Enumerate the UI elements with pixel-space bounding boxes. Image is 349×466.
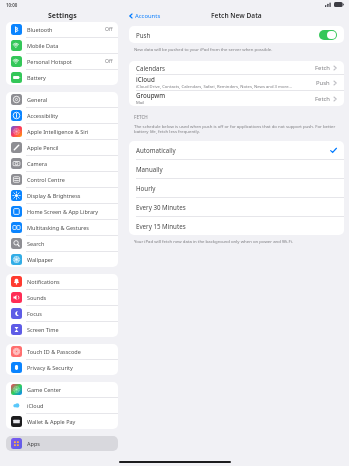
staticText: Apple Pencil — [27, 144, 113, 151]
staticText: The schedule below is used when push is … — [134, 123, 337, 135]
button[interactable]: Groupwm — [129, 91, 344, 106]
staticText: Your iPad will fetch new data in the bac… — [134, 238, 293, 244]
staticText: Personal Hotspot — [27, 58, 105, 65]
button[interactable]: Calendars — [129, 61, 344, 74]
button[interactable]: Screen Time — [6, 322, 118, 337]
staticText: Calendars — [136, 64, 166, 72]
staticText: Fetch — [315, 95, 330, 103]
staticText: Camera — [27, 160, 113, 167]
staticText: 10:00 — [6, 2, 18, 8]
staticText: Notifications — [27, 278, 113, 285]
button[interactable]: Manually — [129, 160, 344, 178]
button[interactable]: Hourly — [129, 179, 344, 197]
staticText: Home Screen & App Library — [27, 208, 113, 215]
staticText: FETCH — [134, 114, 148, 120]
button[interactable]: Game Center — [6, 382, 118, 397]
staticText: Settings — [48, 11, 77, 21]
staticText: Push — [136, 31, 151, 39]
staticText: Apps — [27, 440, 40, 447]
staticText: Push — [316, 79, 330, 87]
staticText: Automatically — [136, 146, 176, 154]
staticText: Hourly — [136, 184, 156, 192]
button[interactable]: iCloud — [129, 75, 344, 90]
staticText: Screen Time — [27, 326, 113, 333]
staticText: Search — [27, 240, 113, 247]
staticText: Mobile Data — [27, 42, 113, 49]
staticText: Game Center — [27, 386, 113, 393]
staticText: iCloud — [136, 75, 155, 83]
staticText: Control Centre — [27, 176, 113, 183]
button[interactable]: Every 30 Minutes — [129, 198, 344, 216]
staticText: Off — [105, 58, 113, 65]
staticText: Manually — [136, 165, 163, 173]
button[interactable]: Home Screen & App Library — [6, 204, 118, 219]
button[interactable]: Focus — [6, 306, 118, 321]
button[interactable]: General — [6, 92, 118, 107]
staticText: Sounds — [27, 294, 113, 301]
staticText: iCloud — [27, 402, 113, 409]
button[interactable]: Battery — [6, 70, 118, 85]
button[interactable]: Accessibility — [6, 108, 118, 123]
button[interactable]: Push, on — [319, 30, 337, 40]
staticText: Display & Brightness — [27, 192, 113, 199]
button[interactable]: Mobile Data — [6, 38, 118, 53]
staticText: Touch ID & Passcode — [27, 348, 113, 355]
staticText: Accessibility — [27, 112, 113, 119]
staticText: General — [27, 96, 113, 103]
staticText: Accounts — [135, 12, 161, 20]
staticText: New data will be pushed to your iPad fro… — [134, 46, 273, 52]
staticText: Bluetooth — [27, 26, 105, 33]
button[interactable]: Search — [6, 236, 118, 251]
button[interactable]: Wallet & Apple Pay — [6, 414, 118, 429]
staticText: iCloud Drive, Contacts, Calendars, Safar… — [136, 84, 292, 90]
button[interactable]: Every 15 Minutes — [129, 217, 344, 235]
staticText: Fetch New Data — [211, 11, 262, 20]
staticText: Multitasking & Gestures — [27, 224, 113, 231]
staticText: Mail — [136, 100, 145, 106]
button[interactable]: Apps — [6, 436, 118, 451]
button[interactable]: Multitasking & Gestures — [6, 220, 118, 235]
button[interactable]: Wallpaper — [6, 252, 118, 267]
button[interactable]: Control Centre — [6, 172, 118, 187]
button[interactable]: Notifications — [6, 274, 118, 289]
staticText: Fetch — [315, 64, 330, 72]
staticText: Battery — [27, 74, 113, 81]
button[interactable]: Touch ID & Passcode — [6, 344, 118, 359]
button[interactable]: iCloud — [6, 398, 118, 413]
button[interactable]: Bluetooth — [6, 22, 118, 37]
button[interactable]: Camera — [6, 156, 118, 171]
staticText: Wallpaper — [27, 256, 113, 263]
staticText: Apple Intelligence & Siri — [27, 128, 113, 135]
staticText: Every 15 Minutes — [136, 222, 186, 230]
staticText: Focus — [27, 310, 113, 317]
staticText: Privacy & Security — [27, 364, 113, 371]
button[interactable]: Privacy & Security — [6, 360, 118, 375]
staticText: Wallet & Apple Pay — [27, 418, 113, 425]
button[interactable]: Display & Brightness — [6, 188, 118, 203]
button[interactable]: Personal Hotspot — [6, 54, 118, 69]
button[interactable]: Push — [129, 26, 344, 43]
button[interactable]: Accounts — [127, 10, 163, 22]
staticText: Every 30 Minutes — [136, 203, 186, 211]
button[interactable]: Sounds — [6, 290, 118, 305]
staticText: Groupwm — [136, 91, 166, 99]
button[interactable]: Apple Pencil — [6, 140, 118, 155]
button[interactable]: Automatically — [129, 141, 344, 159]
staticText: Off — [105, 26, 113, 33]
button[interactable]: Apple Intelligence & Siri — [6, 124, 118, 139]
